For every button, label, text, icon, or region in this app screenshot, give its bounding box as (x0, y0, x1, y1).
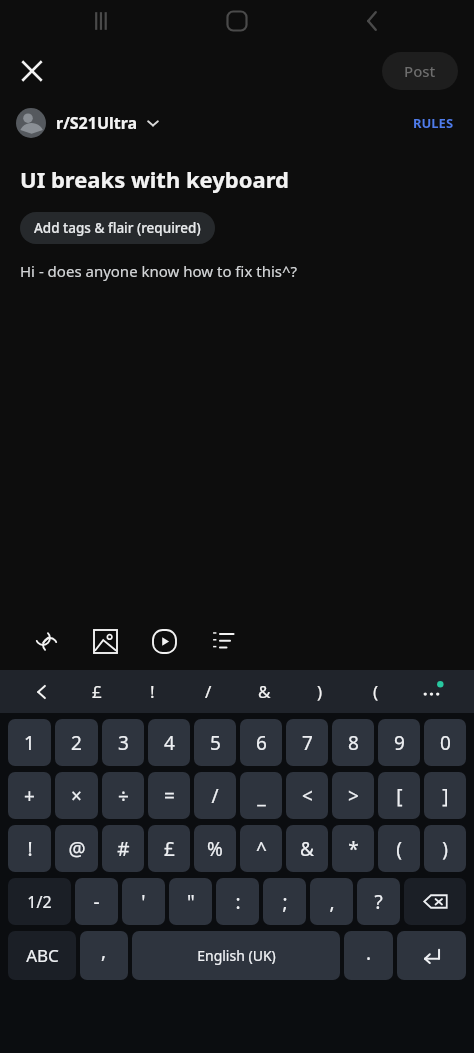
button[interactable]: < (286, 772, 328, 819)
button[interactable]: 7 (286, 719, 328, 766)
staticText: ÷ (118, 783, 129, 809)
button[interactable]: @ (55, 825, 98, 872)
staticText: RULES (413, 114, 454, 132)
button[interactable]: ) (424, 825, 466, 872)
button[interactable]: : (216, 878, 259, 925)
button[interactable]: ^ (240, 825, 282, 872)
button[interactable]: , (310, 878, 353, 925)
button[interactable]: + (8, 772, 51, 819)
staticText: _ (257, 783, 266, 809)
button[interactable]: 8 (332, 719, 374, 766)
button[interactable]: 9 (378, 719, 420, 766)
button[interactable]: ) (292, 670, 348, 713)
staticText: ( (373, 680, 379, 703)
button[interactable]: Post (382, 52, 458, 90)
button[interactable]: _ (240, 772, 282, 819)
staticText: / (205, 680, 212, 703)
staticText: ! (27, 836, 33, 862)
button[interactable]: Attach link (24, 619, 68, 663)
button[interactable]: 2 (55, 719, 98, 766)
button[interactable]: English (UK) (132, 931, 340, 980)
button[interactable]: 3 (102, 719, 144, 766)
button[interactable]: 0 (424, 719, 466, 766)
button[interactable]: Add video (142, 619, 186, 663)
button[interactable]: × (55, 772, 98, 819)
button[interactable]: 4 (148, 719, 190, 766)
button[interactable]: & (236, 670, 292, 713)
button[interactable]: ' (122, 878, 165, 925)
button[interactable]: Previous (14, 670, 69, 713)
button[interactable]: ; (263, 878, 306, 925)
button[interactable]: £ (69, 670, 124, 713)
staticText: ) (442, 836, 448, 862)
button[interactable]: , (80, 931, 128, 980)
button[interactable]: ! (124, 670, 180, 713)
button[interactable]: . (344, 931, 393, 980)
button[interactable]: Recents (86, 4, 120, 38)
button[interactable]: # (102, 825, 144, 872)
staticText: 8 (348, 730, 359, 756)
staticText: 9 (394, 730, 405, 756)
staticText: ' (141, 889, 146, 915)
button[interactable]: ! (8, 825, 51, 872)
button[interactable]: 1 (8, 719, 51, 766)
button[interactable]: Add image (83, 619, 127, 663)
button[interactable]: £ (148, 825, 190, 872)
staticText: £ (92, 680, 102, 703)
button[interactable]: / (180, 670, 236, 713)
button[interactable]: - (75, 878, 118, 925)
button[interactable]: ] (424, 772, 466, 819)
button[interactable]: Close (12, 51, 52, 91)
staticText: # (117, 836, 130, 862)
staticText: ( (396, 836, 402, 862)
staticText: £ (164, 836, 175, 862)
staticText: / (211, 783, 219, 809)
button[interactable]: * (332, 825, 374, 872)
button[interactable]: 5 (194, 719, 236, 766)
staticText: Add tags & flair (required) (34, 219, 201, 237)
button[interactable]: 6 (240, 719, 282, 766)
staticText: Hi - does anyone know how to fix this^? (20, 261, 298, 281)
staticText: " (187, 889, 195, 915)
staticText: - (93, 889, 100, 915)
staticText: 7 (302, 730, 313, 756)
button[interactable]: r/S21Ultra (16, 108, 160, 138)
button[interactable]: 1/2 (8, 878, 71, 925)
staticText: ! (150, 680, 155, 703)
button[interactable]: ( (348, 670, 404, 713)
staticText: r/S21Ultra (56, 112, 138, 134)
staticText: ; (282, 889, 288, 915)
button[interactable]: Poll (201, 619, 245, 663)
staticText: @ (68, 836, 86, 862)
button[interactable]: [ (378, 772, 420, 819)
button[interactable]: ÷ (102, 772, 144, 819)
staticText: English (UK) (197, 946, 276, 965)
button[interactable]: Backspace (404, 878, 466, 925)
staticText: 6 (256, 730, 267, 756)
button[interactable]: ABC (8, 931, 76, 980)
button[interactable]: % (194, 825, 236, 872)
staticText: = (164, 783, 175, 809)
staticText: * (348, 836, 359, 862)
staticText: , (329, 889, 335, 915)
staticText: ^ (256, 836, 267, 862)
button[interactable]: > (332, 772, 374, 819)
button[interactable]: = (148, 772, 190, 819)
staticText: 1/2 (27, 891, 52, 913)
staticText: > (348, 783, 359, 809)
button[interactable]: More options (404, 670, 460, 713)
staticText: 0 (440, 730, 451, 756)
staticText: ABC (26, 944, 59, 967)
button[interactable]: Add tags & flair (required) (20, 212, 215, 244)
button[interactable]: Back (356, 4, 390, 38)
staticText: 1 (24, 730, 35, 756)
staticText: : (235, 889, 241, 915)
button[interactable]: RULES (409, 110, 458, 136)
button[interactable]: ( (378, 825, 420, 872)
button[interactable]: " (169, 878, 212, 925)
button[interactable]: & (286, 825, 328, 872)
button[interactable]: ? (357, 878, 400, 925)
button[interactable]: Enter (397, 931, 466, 980)
button[interactable]: Home (220, 4, 254, 38)
button[interactable]: / (194, 772, 236, 819)
